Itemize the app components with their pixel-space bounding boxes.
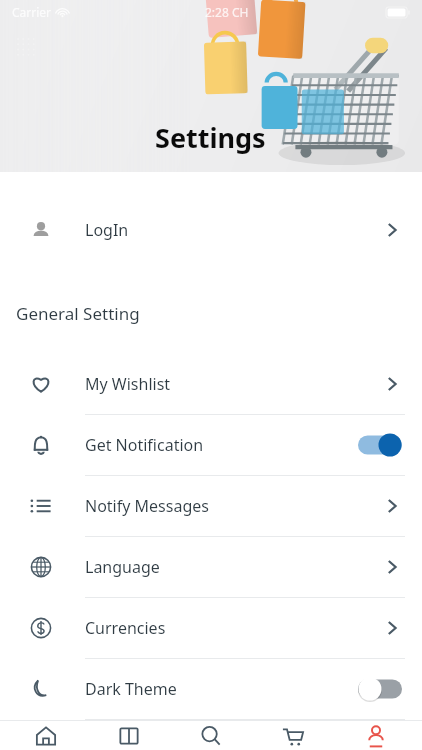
staticText: General Setting (16, 302, 140, 325)
button[interactable]: Language (0, 537, 422, 597)
button[interactable]: My Wishlist (0, 354, 422, 414)
button[interactable]: Categories (93, 721, 165, 750)
button[interactable]: Profile (340, 721, 412, 750)
staticText: Language (85, 556, 160, 578)
staticText: Dark Theme (85, 678, 177, 700)
staticText: Notify Messages (85, 495, 209, 517)
staticText: Currencies (85, 617, 166, 639)
staticText: 2:28 CH (205, 4, 249, 20)
staticText: LogIn (85, 219, 129, 241)
button[interactable]: Cart (257, 721, 329, 750)
button[interactable]: Notify Messages (0, 476, 422, 536)
button[interactable]: Toggle off (358, 677, 402, 701)
button[interactable]: Home (10, 721, 82, 750)
staticText: Settings (155, 119, 266, 156)
staticText: My Wishlist (85, 373, 171, 395)
button[interactable]: LogIn (0, 200, 422, 260)
staticText: Get Notification (85, 434, 204, 456)
button[interactable]: Toggle on (358, 433, 402, 457)
button[interactable]: Search (175, 721, 247, 750)
button[interactable]: Get Notification (0, 415, 422, 475)
button[interactable]: Dark Theme (0, 659, 422, 719)
staticText: Carrier (12, 4, 52, 20)
button[interactable]: Currencies (0, 598, 422, 658)
